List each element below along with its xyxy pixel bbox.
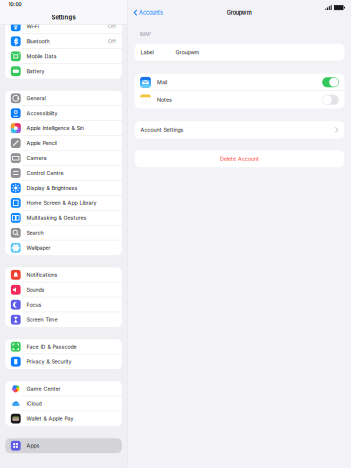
staticText: Wi-Fi (26, 23, 38, 30)
staticText: Control Centre (26, 170, 63, 176)
staticText: Off (108, 23, 116, 30)
button[interactable]: Notifications (5, 267, 122, 282)
staticText: Face ID & Passcode (26, 343, 76, 350)
staticText: Apple Intelligence & Siri (26, 125, 83, 131)
staticText: Home Screen & App Library (26, 200, 96, 206)
staticText: Battery (26, 68, 44, 74)
staticText: Multitasking & Gestures (26, 215, 86, 221)
staticText: Focus (26, 301, 41, 308)
staticText: Game Center (26, 385, 60, 392)
button[interactable]: Accounts (134, 6, 163, 19)
button[interactable]: iCloud (5, 396, 122, 411)
button[interactable]: Apps (5, 438, 122, 453)
staticText: IMAP (140, 32, 151, 37)
button[interactable]: Home Screen & App Library (5, 195, 122, 210)
staticText: Accounts (139, 9, 163, 16)
button[interactable]: Label (135, 44, 344, 61)
staticText: Camera (26, 155, 46, 161)
staticText: Off (108, 38, 116, 45)
staticText: Wallpaper (26, 244, 50, 251)
staticText: Screen Time (26, 316, 57, 323)
staticText: 10:00 (8, 2, 21, 7)
button[interactable]: Accessibility (5, 106, 122, 121)
button[interactable]: Account Settings (135, 121, 344, 139)
staticText: Account Settings (140, 127, 183, 133)
button[interactable]: Apple Pencil (5, 136, 122, 150)
button[interactable]: Face ID & Passcode (5, 339, 122, 354)
button[interactable]: Privacy & Security (5, 354, 122, 369)
button[interactable]: Focus (5, 297, 122, 312)
staticText: Apple Pencil (26, 140, 56, 146)
staticText: Accessibility (26, 110, 57, 116)
staticText: General (26, 95, 45, 101)
staticText: Label (140, 49, 153, 56)
button[interactable]: Multitasking & Gestures (5, 210, 122, 225)
button[interactable]: Delete Account (135, 150, 344, 167)
button[interactable]: Wi-Fi (5, 19, 122, 34)
button[interactable]: Control Centre (5, 165, 122, 180)
button[interactable]: General (5, 91, 122, 106)
button[interactable]: Wallpaper (5, 240, 122, 255)
button[interactable]: Mobile Data (5, 49, 122, 64)
staticText: Apps (26, 442, 39, 449)
button[interactable]: Bluetooth (5, 34, 122, 49)
button[interactable]: Camera (5, 151, 122, 165)
staticText: Bluetooth (26, 38, 49, 45)
button[interactable]: Notes (135, 91, 344, 108)
staticText: iCloud (26, 400, 41, 407)
button[interactable]: Screen Time (5, 312, 122, 327)
staticText: Display & Brightness (26, 185, 77, 191)
button[interactable]: Sounds (5, 282, 122, 297)
staticText: Notifications (26, 272, 57, 278)
button[interactable]: Display & Brightness (5, 180, 122, 195)
staticText: Groupwm (227, 9, 252, 16)
staticText: Privacy & Security (26, 358, 71, 365)
staticText: Sounds (26, 286, 44, 293)
staticText: Groupwm (175, 49, 199, 56)
staticText: Mobile Data (26, 53, 56, 59)
staticText: Notes (157, 96, 172, 103)
staticText: Delete Account (220, 155, 259, 162)
button[interactable]: Wallet & Apple Pay (5, 411, 122, 426)
staticText: Wallet & Apple Pay (26, 415, 73, 422)
button[interactable]: Mail (135, 73, 344, 91)
staticText: Search (26, 230, 43, 236)
button[interactable]: Apple Intelligence & Siri (5, 121, 122, 136)
button[interactable]: Search (5, 225, 122, 240)
staticText: Mail (157, 79, 167, 85)
staticText: Settings (51, 14, 75, 21)
button[interactable]: Game Center (5, 381, 122, 396)
button[interactable]: Battery (5, 64, 122, 79)
